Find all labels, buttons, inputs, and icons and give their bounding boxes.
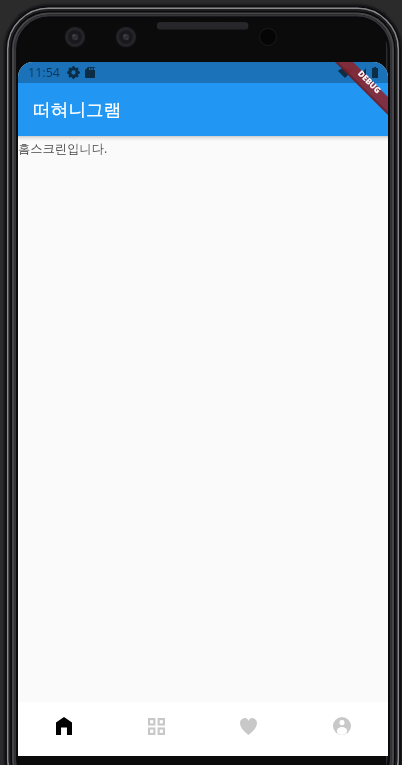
button[interactable]: Home	[18, 702, 110, 750]
staticText: DEBUG	[355, 68, 384, 97]
staticText: 떠혀니그램	[33, 99, 122, 121]
staticText: 11:54	[28, 64, 60, 81]
button[interactable]: Likes	[202, 702, 295, 750]
button[interactable]: Profile	[295, 702, 388, 750]
staticText: 홈스크린입니다.	[18, 140, 108, 157]
button[interactable]: Explore	[110, 702, 202, 750]
